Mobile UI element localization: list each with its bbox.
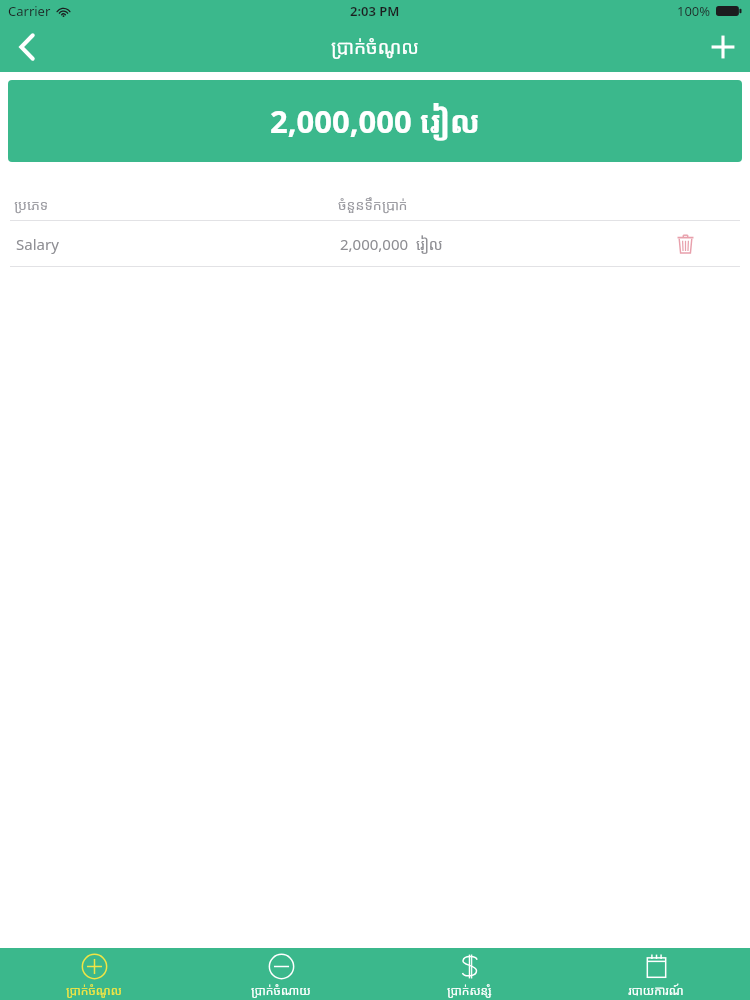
button[interactable]: ប្រាក់សន្សំ (376, 950, 562, 998)
staticText: ប្រាក់សន្សំ (447, 982, 492, 998)
button[interactable]: 2,000,000 រៀល (8, 80, 742, 162)
staticText: ប្រាក់ចំណូល (66, 982, 122, 998)
button[interactable]: Salary (0, 221, 750, 266)
staticText: Salary (16, 234, 59, 254)
staticText: របាយការណ៍ (628, 982, 684, 998)
button[interactable]: ប្រាក់ចំណាយ (188, 950, 374, 998)
button[interactable]: ប្រាក់ចំណូល (1, 950, 187, 998)
button[interactable]: Back (0, 22, 54, 72)
button[interactable]: Add (696, 22, 750, 72)
staticText: ប្រភេទ (14, 195, 49, 214)
staticText: ចំនួនទឹកប្រាក់ (338, 195, 408, 214)
staticText: 2,000,000 រៀល (340, 234, 443, 254)
staticText: 2,000,000 រៀល (270, 100, 481, 142)
staticText: 2:03 PM (350, 2, 400, 20)
staticText: ប្រាក់ចំណាយ (251, 982, 311, 998)
staticText: ប្រាក់ចំណូល (331, 34, 419, 60)
staticText: Carrier (8, 2, 51, 20)
button[interactable]: របាយការណ៍ (563, 950, 749, 998)
staticText: 100% (677, 2, 711, 20)
button[interactable]: Delete (668, 227, 702, 261)
